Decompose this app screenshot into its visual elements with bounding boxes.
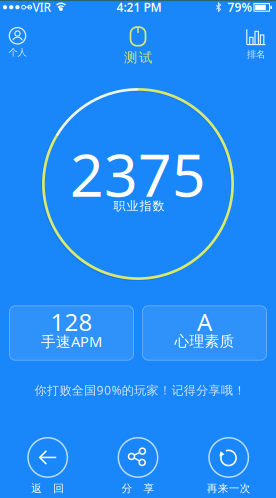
staticText: 个人 [8, 47, 26, 58]
staticText: 职业指数 [113, 199, 164, 213]
staticText: 你打败全国90%的玩家！记得分享哦！ [35, 382, 245, 398]
staticText: A [197, 306, 212, 338]
staticText: 返 回 [31, 482, 64, 495]
button[interactable]: 排名 [246, 29, 266, 60]
button[interactable]: 分享 [117, 437, 158, 495]
staticText: VIR [32, 0, 51, 15]
button[interactable]: 再来一次 [207, 437, 251, 495]
staticText: 手速APM [41, 331, 102, 351]
button[interactable]: 个人 [8, 27, 26, 58]
staticText: 分 享 [121, 482, 154, 495]
staticText: 79% [227, 0, 252, 15]
staticText: 心理素质 [174, 332, 234, 350]
staticText: 排名 [247, 49, 265, 60]
staticText: 再来一次 [207, 482, 251, 495]
staticText: 4:21 PM [116, 0, 161, 15]
staticText: 2375 [70, 135, 206, 213]
staticText: 测试 [124, 49, 152, 66]
button[interactable]: 测试 [124, 26, 152, 66]
button[interactable]: 返回 [27, 437, 68, 495]
staticText: 128 [50, 306, 92, 338]
